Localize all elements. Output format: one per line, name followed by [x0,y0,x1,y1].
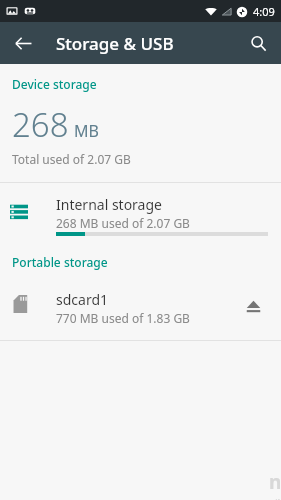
staticText: Internal storage [56,195,162,214]
button[interactable]: Eject sdcard1 [235,288,271,324]
button[interactable]: Internal storage [0,183,281,240]
staticText: Storage & USB [56,32,174,55]
staticText: sdcard1 [56,290,109,309]
staticText: need [269,469,281,495]
button[interactable]: Back [4,24,42,62]
staticText: MB [74,120,99,142]
staticText: 268 [12,102,69,147]
staticText: Portable storage [12,254,108,270]
staticText: 268 MB used of 2.07 GB [56,215,190,231]
staticText: 4:09 [253,4,275,19]
button[interactable]: sdcard1 [0,286,281,330]
staticText: 770 MB used of 1.83 GB [56,310,190,326]
staticText: Total used of 2.07 GB [12,151,131,167]
button[interactable]: Search [239,24,277,62]
staticText: Device storage [12,76,97,92]
